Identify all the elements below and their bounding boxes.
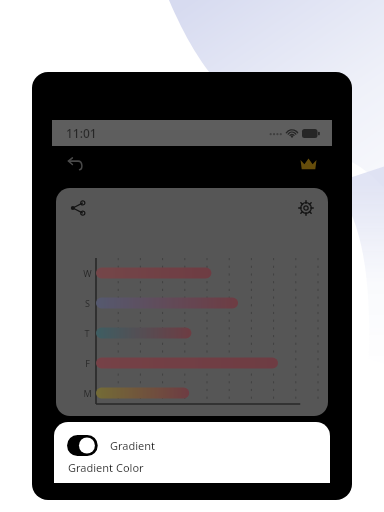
button[interactable]: Share (62, 192, 94, 224)
button[interactable]: Gradient Color (68, 460, 144, 475)
button[interactable]: Gradient (68, 432, 156, 458)
staticText: W (83, 267, 92, 279)
staticText: S (85, 297, 90, 309)
staticText: T (84, 327, 90, 339)
staticText: M (83, 387, 92, 399)
button[interactable]: Settings (290, 192, 322, 224)
button[interactable]: Premium (290, 146, 326, 182)
button[interactable]: Back (58, 146, 94, 182)
staticText: Gradient (110, 438, 156, 453)
staticText: 11:01 (66, 125, 97, 141)
staticText: F (85, 357, 90, 369)
